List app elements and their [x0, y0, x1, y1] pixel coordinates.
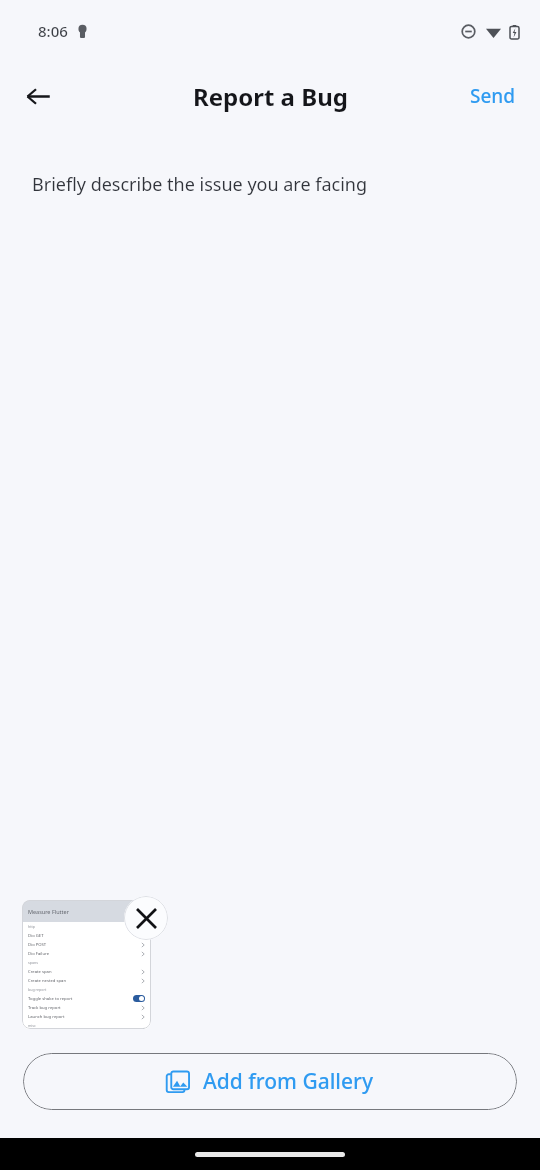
staticText: Send: [470, 83, 516, 109]
staticText: http: [28, 924, 36, 929]
button[interactable]: Back: [12, 70, 64, 122]
staticText: 8:06: [38, 21, 68, 41]
button[interactable]: Add from Gallery: [23, 1053, 517, 1110]
staticText: bug report: [28, 987, 47, 992]
staticText: Launch bug report: [28, 1014, 65, 1020]
button[interactable]: Measure Flutter: [22, 900, 151, 1029]
staticText: Toggle shake to report: [28, 996, 73, 1002]
staticText: Track bug report: [28, 1005, 61, 1011]
button[interactable]: Remove attachment: [124, 896, 168, 940]
staticText: Briefly describe the issue you are facin…: [32, 172, 368, 197]
staticText: Add from Gallery: [203, 1067, 374, 1096]
staticText: Measure Flutter: [28, 908, 69, 915]
staticText: Dio GET: [28, 933, 44, 939]
staticText: Report a Bug: [193, 80, 348, 113]
staticText: Create nested span: [28, 978, 66, 984]
button[interactable]: Send: [456, 75, 530, 117]
staticText: spans: [28, 960, 38, 965]
staticText: misc: [28, 1023, 36, 1028]
staticText: Dio POST: [28, 942, 47, 948]
staticText: Dio Failure: [28, 951, 50, 957]
staticText: Create span: [28, 969, 52, 975]
